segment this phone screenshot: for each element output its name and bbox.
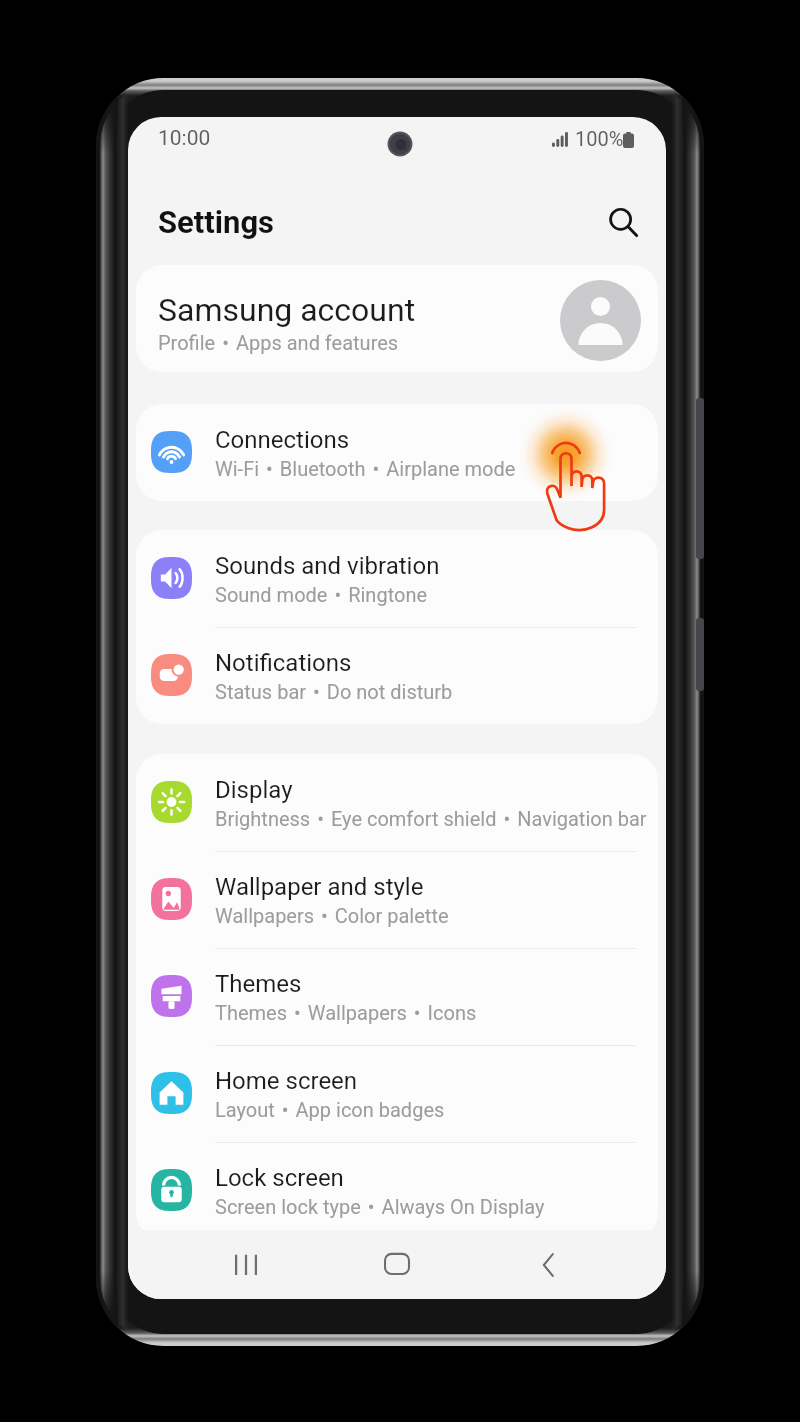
staticText: Sound mode • Ringtone	[215, 583, 428, 606]
button[interactable]: Home	[367, 1230, 427, 1299]
button[interactable]: Display	[136, 754, 658, 851]
staticText: Home screen	[215, 1067, 358, 1095]
button[interactable]: Themes	[136, 948, 658, 1045]
button[interactable]: Recents	[216, 1230, 276, 1299]
staticText: Layout • App icon badges	[215, 1098, 445, 1121]
staticText: Lock screen	[215, 1164, 344, 1192]
staticText: Status bar • Do not disturb	[215, 680, 453, 703]
button[interactable]: Samsung account	[136, 265, 658, 372]
button[interactable]: Back	[518, 1230, 578, 1299]
staticText: Samsung account	[158, 291, 416, 329]
button[interactable]: Notifications	[136, 627, 658, 724]
staticText: Wallpaper and style	[215, 873, 424, 901]
button[interactable]: Connections	[136, 404, 658, 501]
staticText: Notifications	[215, 649, 352, 677]
button[interactable]: Lock screen	[136, 1142, 658, 1239]
button[interactable]: Wallpaper and style	[136, 851, 658, 948]
staticText: Screen lock type • Always On Display	[215, 1195, 545, 1218]
staticText: 100%	[575, 127, 624, 150]
button[interactable]: Search	[595, 194, 651, 250]
button[interactable]: Home screen	[136, 1045, 658, 1142]
staticText: 10:00	[158, 126, 211, 151]
staticText: Wallpapers • Color palette	[215, 904, 449, 927]
staticText: Sounds and vibration	[215, 552, 440, 580]
button[interactable]: Sounds and vibration	[136, 530, 658, 627]
staticText: Themes • Wallpapers • Icons	[215, 1001, 477, 1024]
staticText: Brightness • Eye comfort shield • Naviga…	[215, 807, 647, 830]
staticText: Themes	[215, 970, 302, 998]
staticText: Wi-Fi • Bluetooth • Airplane mode	[215, 457, 516, 480]
staticText: Connections	[215, 426, 350, 454]
staticText: Display	[215, 776, 293, 804]
staticText: Profile • Apps and features	[158, 331, 399, 354]
staticText: Settings	[158, 204, 275, 240]
